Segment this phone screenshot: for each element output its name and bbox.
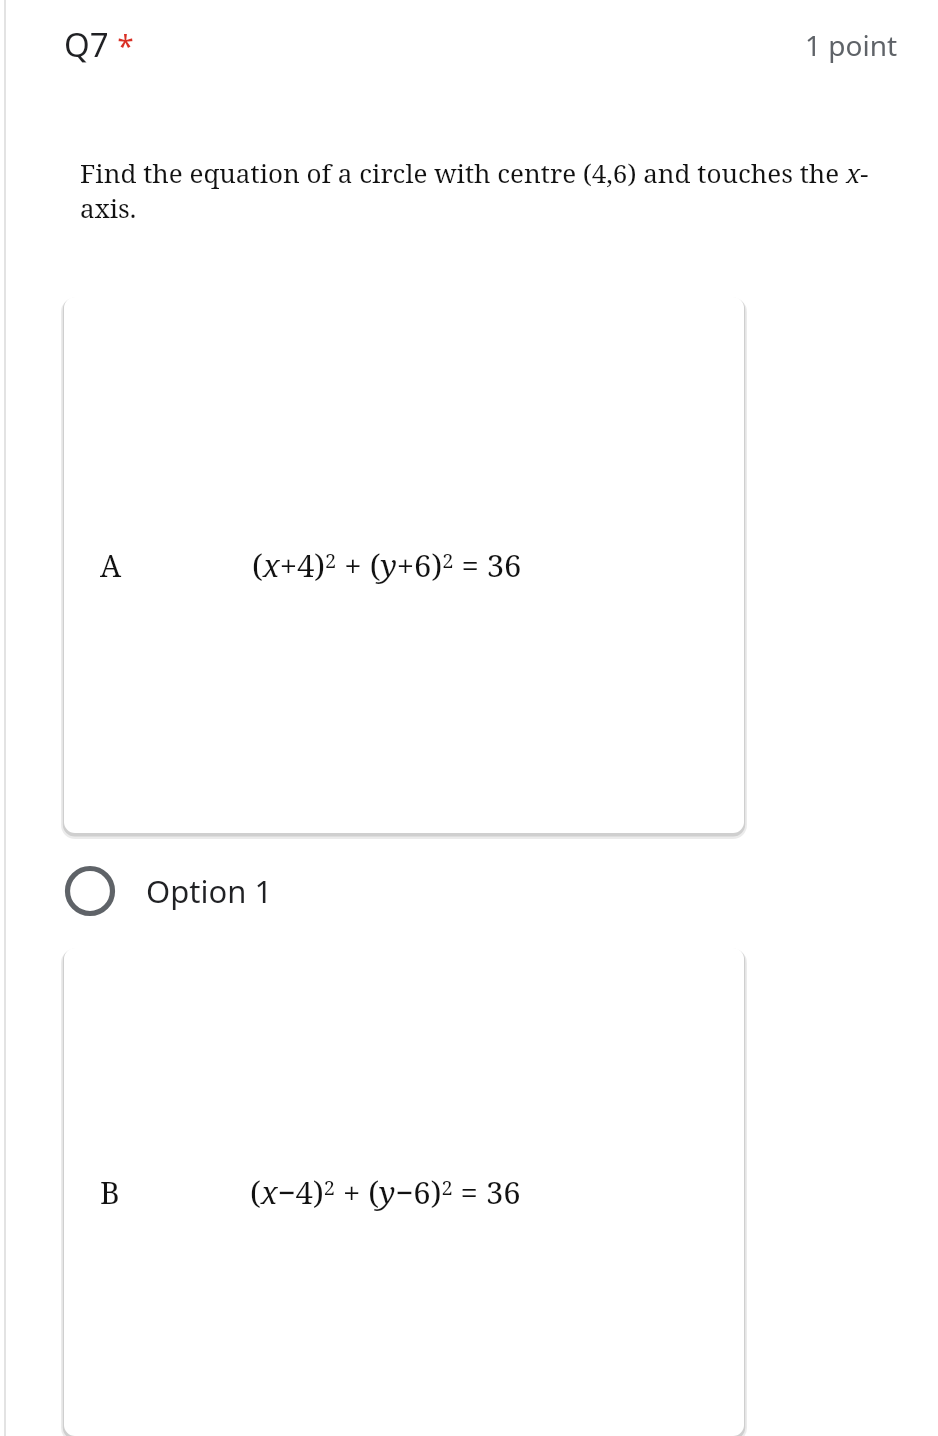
staticText: Find the equation of a circle with centr… bbox=[80, 155, 898, 225]
button[interactable]: A bbox=[64, 297, 744, 833]
staticText: (x+4)2 + (y+6)2 = 36 bbox=[252, 544, 522, 586]
staticText: 1 point bbox=[805, 26, 898, 64]
other: Select Option 1 bbox=[64, 865, 116, 917]
staticText: Q7 * bbox=[64, 22, 134, 67]
button[interactable]: B bbox=[64, 948, 744, 1436]
staticText: B bbox=[100, 1172, 120, 1213]
button[interactable]: Select Option 1 bbox=[64, 865, 898, 917]
staticText: Option 1 bbox=[146, 870, 273, 912]
staticText: A bbox=[100, 545, 122, 586]
staticText: (x−4)2 + (y−6)2 = 36 bbox=[250, 1171, 521, 1213]
